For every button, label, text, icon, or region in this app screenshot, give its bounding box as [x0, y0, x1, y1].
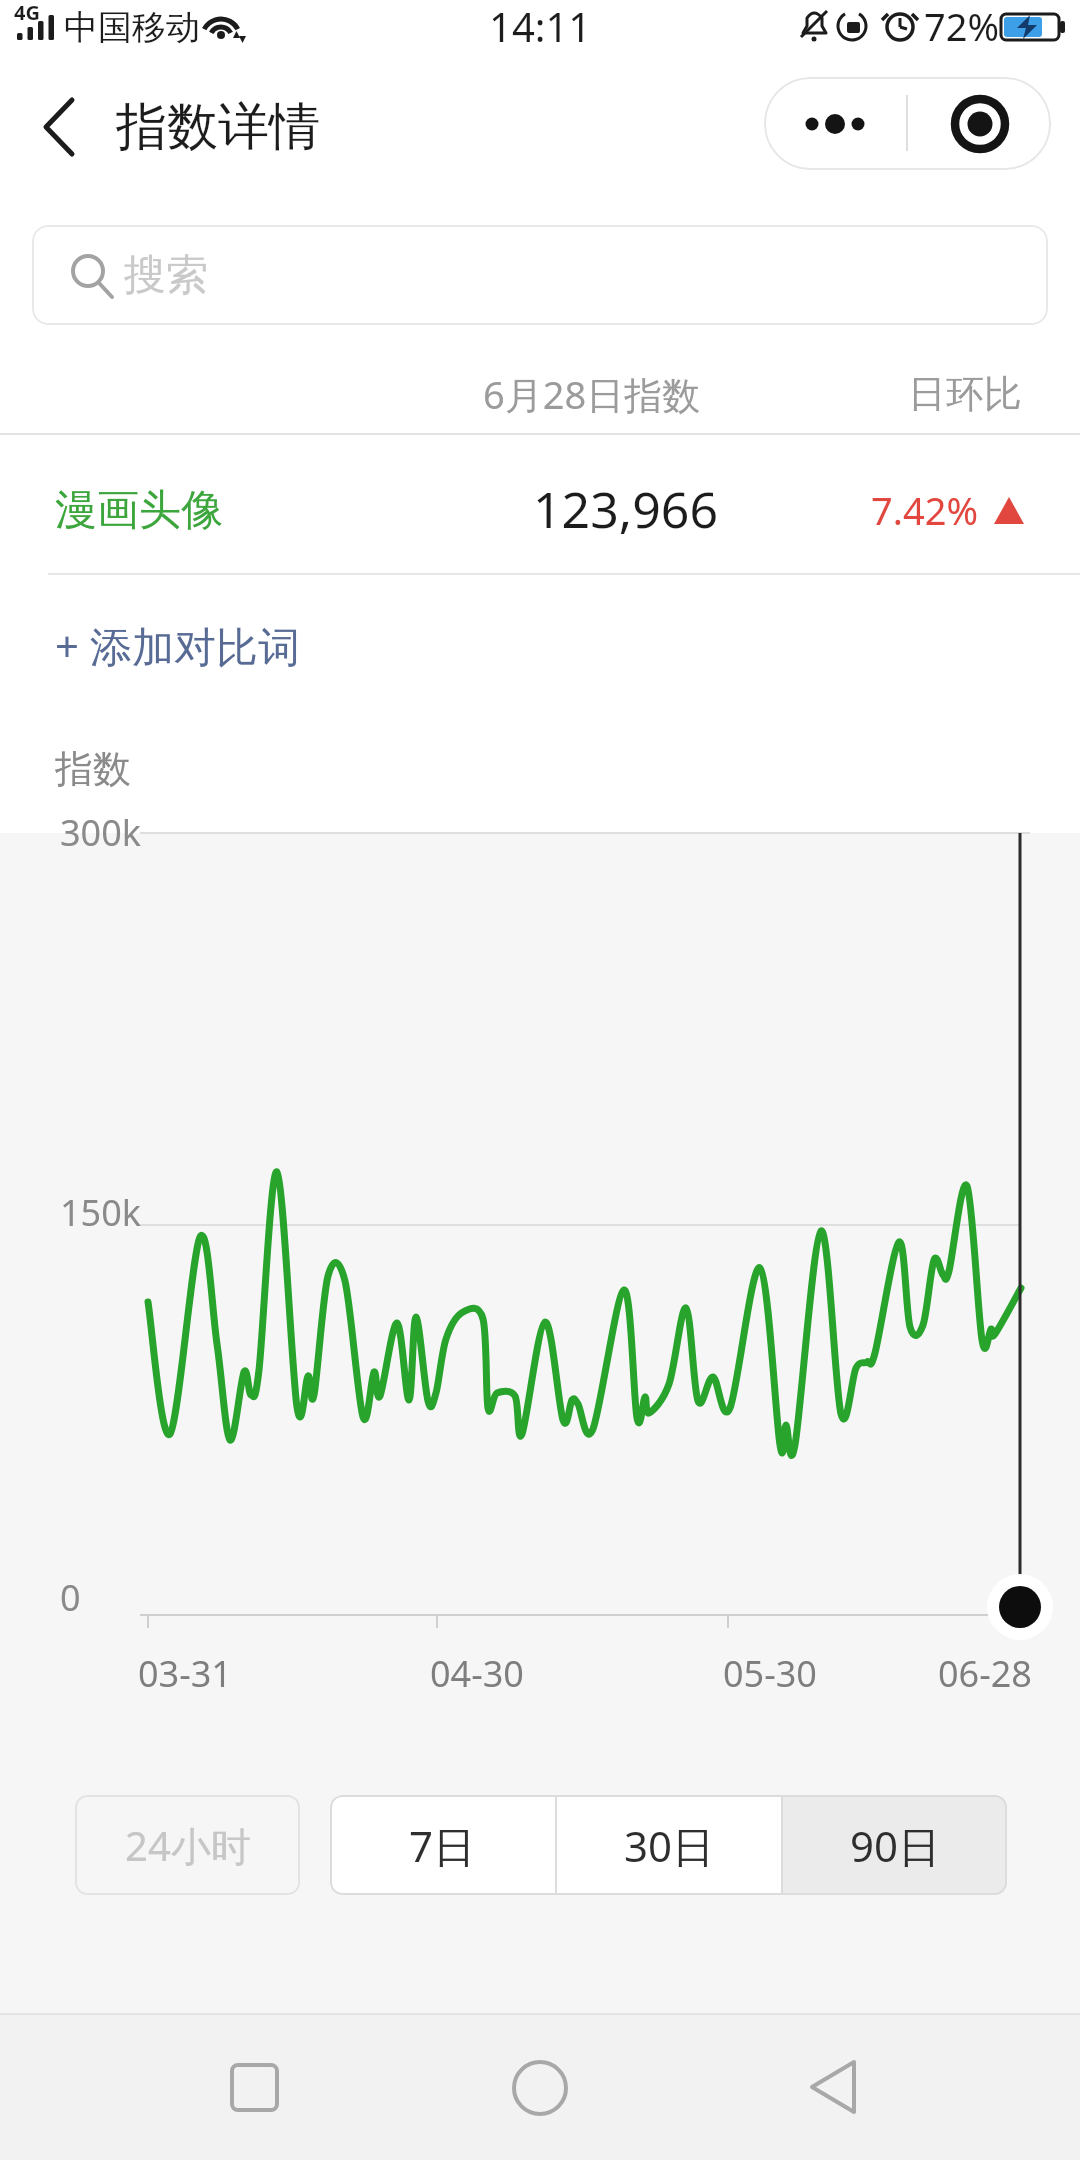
staticText: 漫画头像 — [55, 484, 223, 537]
staticText: 05-30 — [723, 1649, 817, 1698]
staticText: 24小时 — [125, 1818, 251, 1873]
staticText: 123,966 — [533, 475, 718, 543]
staticText: 中国移动 — [64, 6, 200, 49]
button[interactable]: + 添加对比词 — [40, 602, 340, 688]
staticText: 30日 — [624, 1817, 715, 1874]
staticText: + 添加对比词 — [55, 617, 300, 674]
button[interactable] — [495, 2043, 585, 2133]
staticText: 6月28日指数 — [483, 368, 701, 420]
button[interactable] — [908, 77, 1051, 170]
button[interactable]: 搜索 — [32, 225, 1048, 325]
staticText: 0 — [60, 1573, 81, 1622]
staticText: 指数 — [55, 745, 131, 793]
staticText: 06-28 — [938, 1649, 1032, 1698]
button[interactable] — [0, 435, 1080, 574]
button[interactable]: 90日 — [783, 1795, 1007, 1895]
staticText: 150k — [60, 1188, 142, 1237]
staticText: 72% — [924, 0, 1000, 52]
staticText: 7日 — [409, 1817, 476, 1874]
button[interactable] — [210, 2043, 300, 2133]
staticText: 搜索 — [124, 249, 208, 302]
button[interactable] — [20, 88, 100, 168]
staticText: 03-31 — [138, 1649, 232, 1698]
staticText: 300k — [60, 808, 142, 857]
button[interactable] — [764, 77, 906, 170]
button[interactable]: 30日 — [557, 1795, 781, 1895]
staticText: 14:11 — [489, 0, 592, 53]
staticText: 90日 — [850, 1817, 941, 1874]
staticText: 7.42% — [871, 484, 978, 536]
button[interactable]: 24小时 — [75, 1795, 300, 1895]
staticText: 04-30 — [430, 1649, 524, 1698]
button[interactable]: 7日 — [330, 1795, 555, 1895]
staticText: 指数详情 — [116, 95, 320, 159]
staticText: 4G — [14, 0, 40, 26]
button[interactable] — [788, 2043, 878, 2133]
staticText: 日环比 — [908, 370, 1022, 418]
